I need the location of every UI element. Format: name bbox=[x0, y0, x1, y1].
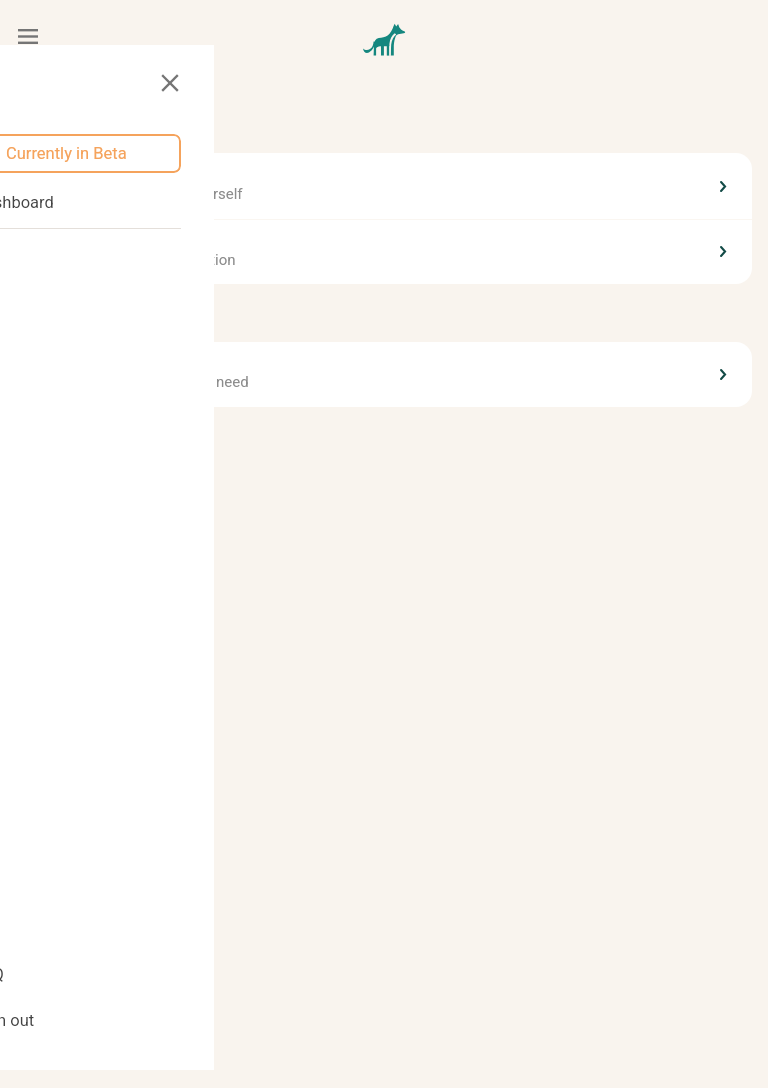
button[interactable]: FAQ bbox=[0, 951, 214, 997]
staticText: FAQ bbox=[0, 965, 4, 984]
button[interactable]: Dashboard bbox=[0, 175, 214, 230]
button[interactable]: Tell us about you and yourself bbox=[16, 153, 752, 219]
staticText: Currently in Beta bbox=[6, 144, 127, 163]
button[interactable]: Currently in Beta bbox=[0, 134, 181, 173]
button[interactable]: Open menu bbox=[8, 16, 48, 56]
staticText: Your dog's health information bbox=[40, 251, 236, 269]
staticText: Tell us about you and yourself bbox=[44, 185, 243, 203]
button[interactable]: Close menu bbox=[151, 64, 188, 101]
staticText: Sign out bbox=[0, 1011, 35, 1030]
button[interactable]: Anything else your pet may need bbox=[16, 342, 752, 407]
button[interactable]: Sign out bbox=[0, 997, 214, 1043]
staticText: Dashboard bbox=[0, 193, 54, 212]
button[interactable]: Your dog's health information bbox=[16, 219, 752, 284]
staticText: Anything else your pet may need bbox=[33, 373, 249, 391]
